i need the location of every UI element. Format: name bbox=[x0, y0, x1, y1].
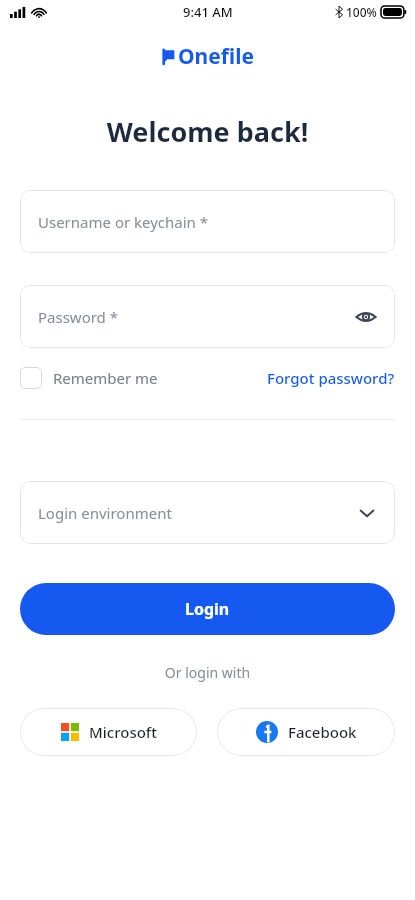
button[interactable]: Login bbox=[20, 583, 395, 635]
staticText: Username or keychain * bbox=[38, 212, 377, 232]
staticText: Microsoft bbox=[89, 722, 157, 742]
staticText: Facebook bbox=[288, 722, 357, 742]
other: Open login environment list bbox=[357, 503, 377, 523]
staticText: Or login with bbox=[0, 663, 415, 682]
staticText: Password * bbox=[38, 307, 355, 327]
staticText: 100% bbox=[346, 4, 377, 20]
staticText: Login bbox=[185, 598, 230, 620]
button[interactable]: Facebook bbox=[217, 708, 395, 756]
button[interactable]: Remember me bbox=[20, 367, 158, 389]
button[interactable]: Login environment bbox=[20, 481, 395, 544]
staticText: Onefile bbox=[178, 42, 254, 71]
staticText: Remember me bbox=[53, 368, 158, 388]
button[interactable]: Username or keychain * bbox=[20, 190, 395, 253]
button[interactable]: Forgot password? bbox=[267, 368, 395, 388]
button[interactable]: Password * bbox=[20, 285, 395, 348]
staticText: 9:41 AM bbox=[183, 3, 233, 21]
staticText: Login environment bbox=[38, 503, 357, 523]
staticText: Forgot password? bbox=[267, 368, 395, 388]
other: Show password bbox=[355, 306, 377, 328]
staticText: Welcome back! bbox=[0, 113, 415, 150]
button[interactable]: Microsoft bbox=[20, 708, 197, 756]
